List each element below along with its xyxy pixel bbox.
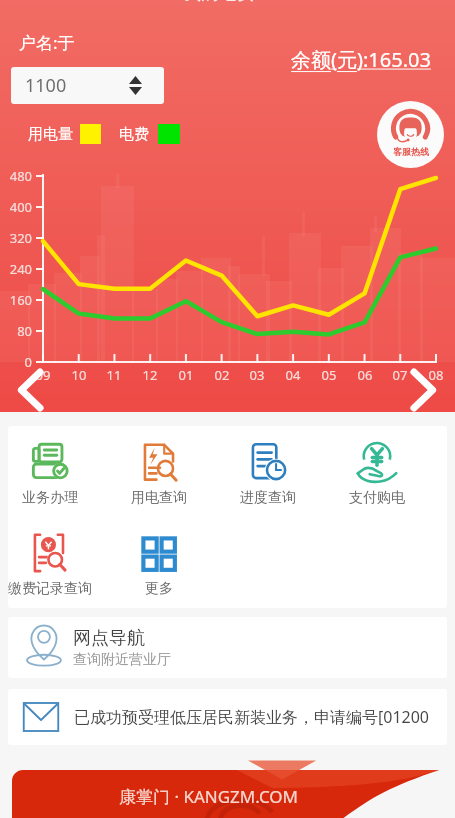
staticText: 10 <box>67 366 91 384</box>
staticText: 06 <box>353 366 377 384</box>
button[interactable]: 下一页 <box>406 367 442 413</box>
button[interactable]: 客服热线 <box>377 101 444 168</box>
staticText: 进度查询 <box>240 489 296 507</box>
staticText: 480 <box>0 167 32 185</box>
button[interactable]: 康掌门 · KANGZM.COM <box>0 770 455 818</box>
staticText: 0 <box>0 353 32 371</box>
staticText: 160 <box>0 291 32 309</box>
staticText: 我的电费 <box>183 0 255 5</box>
staticText: 05 <box>317 366 341 384</box>
staticText: 03 <box>245 366 269 384</box>
button[interactable]: 缴费记录查询 <box>8 518 104 608</box>
staticText: 240 <box>0 260 32 278</box>
staticText: 查询附近营业厅 <box>73 651 171 669</box>
staticText: 320 <box>0 229 32 247</box>
staticText: 更多 <box>145 580 173 598</box>
staticText: 400 <box>0 198 32 216</box>
staticText: 09 <box>31 366 55 384</box>
button[interactable]: 更多 <box>104 518 213 608</box>
button[interactable]: 用电查询 <box>104 426 213 518</box>
staticText: 网点导航 <box>73 627 145 650</box>
staticText: 80 <box>0 322 32 340</box>
staticText: 1100 <box>25 73 67 98</box>
staticText: 客服热线 <box>393 146 429 157</box>
staticText: 康掌门 · KANGZM.COM <box>119 785 299 808</box>
button[interactable]: 已成功预受理低压居民新装业务，申请编号[01200 <box>8 689 447 745</box>
staticText: 02 <box>210 366 234 384</box>
staticText: 04 <box>281 366 305 384</box>
staticText: 户名:于 <box>19 31 75 54</box>
staticText: 余额(元):165.03 <box>291 46 431 73</box>
staticText: 08 <box>424 366 448 384</box>
staticText: 01 <box>174 366 198 384</box>
button[interactable]: 业务办理 <box>8 426 104 518</box>
staticText: 12 <box>138 366 162 384</box>
button[interactable]: 进度查询 <box>213 426 322 518</box>
staticText: 用电查询 <box>131 489 187 507</box>
button[interactable]: 1100 <box>11 67 164 104</box>
button[interactable]: 上一页 <box>12 367 48 413</box>
button[interactable]: 网点导航 <box>8 617 447 678</box>
button[interactable]: 支付购电 <box>322 426 431 518</box>
staticText: 07 <box>388 366 412 384</box>
staticText: 用电量 <box>28 125 73 144</box>
staticText: 电费 <box>119 125 149 144</box>
staticText: 支付购电 <box>349 489 405 507</box>
staticText: 已成功预受理低压居民新装业务，申请编号[01200 <box>74 706 430 728</box>
staticText: 业务办理 <box>22 489 78 507</box>
staticText: 缴费记录查询 <box>8 580 92 598</box>
staticText: 11 <box>102 366 126 384</box>
